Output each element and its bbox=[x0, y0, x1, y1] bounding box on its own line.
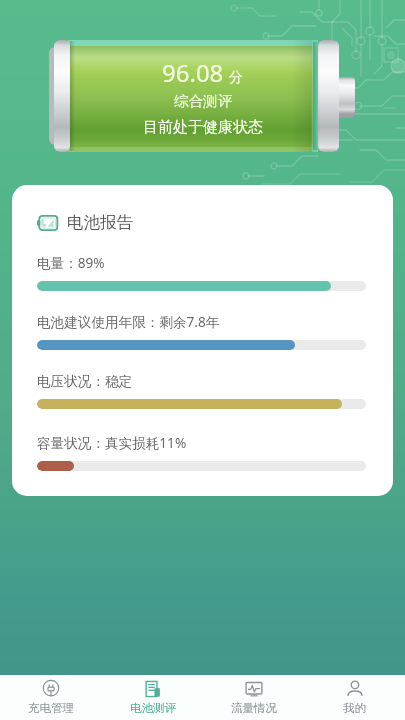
button[interactable]: 我的 bbox=[304, 676, 405, 719]
staticText: 流量情况 bbox=[231, 701, 277, 715]
staticText: 96.08 bbox=[162, 56, 224, 89]
button[interactable]: 电池测评 bbox=[102, 676, 203, 719]
staticText: 电池测评 bbox=[130, 701, 176, 715]
staticText: 目前处于健康状态 bbox=[143, 118, 263, 137]
staticText: 综合测评 bbox=[174, 92, 232, 110]
staticText: 电量：89% bbox=[37, 253, 105, 272]
staticText: 分 bbox=[229, 69, 243, 87]
staticText: 电池报告 bbox=[67, 212, 133, 233]
button[interactable]: 充电管理 bbox=[0, 676, 102, 719]
staticText: 我的 bbox=[343, 701, 366, 715]
staticText: 充电管理 bbox=[28, 701, 74, 715]
staticText: 容量状况：真实损耗11% bbox=[37, 433, 187, 452]
staticText: 电池建议使用年限：剩余7.8年 bbox=[37, 312, 220, 331]
button[interactable]: 流量情况 bbox=[203, 676, 304, 719]
staticText: 电压状况：稳定 bbox=[37, 373, 133, 390]
